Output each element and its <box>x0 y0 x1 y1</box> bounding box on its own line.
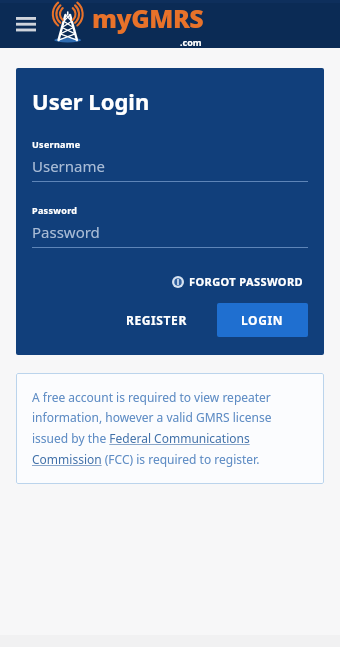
staticText: LOGIN <box>241 312 284 328</box>
staticText: Password <box>32 222 100 242</box>
staticText: FORGOT PASSWORD <box>189 274 304 289</box>
staticText: REGISTER <box>126 312 187 328</box>
button[interactable]: Open navigation menu <box>10 8 42 40</box>
staticText: .com <box>180 36 202 48</box>
staticText: myGMRS <box>92 1 204 35</box>
button[interactable]: REGISTER <box>110 303 203 337</box>
staticText: User Login <box>32 86 150 116</box>
button[interactable]: LOGIN <box>217 303 308 337</box>
staticText: Username <box>32 156 105 176</box>
staticText: A free account is required to view repea… <box>32 389 308 468</box>
button[interactable]: FORGOT PASSWORD <box>168 270 308 293</box>
staticText: Password <box>32 204 78 216</box>
button[interactable]: Username <box>32 138 308 182</box>
staticText: Username <box>32 138 81 150</box>
button[interactable]: Password <box>32 204 308 248</box>
button[interactable]: myGMRS home <box>48 1 204 48</box>
